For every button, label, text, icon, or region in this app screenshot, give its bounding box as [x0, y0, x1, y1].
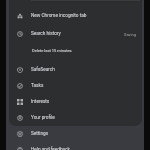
staticText: Search history: [31, 31, 61, 37]
button[interactable]: Interests: [9, 94, 142, 110]
staticText: New Chrome incognito tab: [31, 13, 87, 19]
staticText: Delete last 15 minutes: [32, 48, 72, 53]
button[interactable]: SafeSearch: [9, 62, 142, 78]
staticText: Settings: [31, 131, 49, 137]
button[interactable]: Delete last 15 minutes: [9, 44, 142, 58]
staticText: Saving: [124, 32, 136, 37]
button[interactable]: Tasks: [9, 78, 142, 94]
staticText: Interests: [31, 99, 50, 105]
button[interactable]: New incognito tab: [9, 8, 142, 24]
staticText: SafeSearch: [31, 67, 55, 73]
staticText: Your profile: [31, 115, 55, 121]
staticText: Tasks: [31, 83, 44, 89]
button[interactable]: Your profile: [9, 110, 142, 126]
button[interactable]: Help and feedback: [9, 142, 142, 150]
staticText: Help and feedback: [31, 147, 70, 150]
button[interactable]: Settings: [9, 126, 142, 142]
button[interactable]: Search history: [9, 26, 142, 42]
